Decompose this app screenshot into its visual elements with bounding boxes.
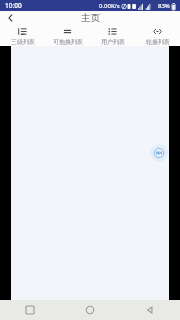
staticText: 83% [158, 2, 170, 10]
staticText: 用户列表 [101, 38, 125, 46]
button[interactable]: 三级列表 [0, 25, 45, 46]
staticText: 0.00K/s [99, 2, 120, 10]
staticText: 轮播列表 [146, 38, 170, 46]
staticText: 可拖拽列表 [53, 38, 83, 46]
staticText: 三级列表 [11, 38, 35, 46]
staticText: 主页 [81, 12, 100, 24]
button[interactable]: 用户列表 [90, 25, 135, 46]
button[interactable]: Video call [150, 144, 168, 162]
button[interactable]: Recents [0, 300, 60, 320]
button[interactable]: Home [60, 300, 120, 320]
staticText: 10:00 [5, 1, 22, 10]
button[interactable]: Back [0, 11, 20, 25]
button[interactable]: 可拖拽列表 [45, 25, 90, 46]
button[interactable]: 轮播列表 [135, 25, 180, 46]
button[interactable]: Back [120, 300, 180, 320]
